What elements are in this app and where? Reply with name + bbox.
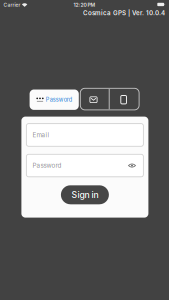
staticText: Sign in xyxy=(71,190,98,200)
staticText: Cosmica GPS | Ver. 10.0.4 xyxy=(83,9,165,17)
button[interactable]: Sign in with email xyxy=(79,89,108,110)
staticText: Password xyxy=(32,162,61,169)
staticText: 12:20 PM xyxy=(73,2,95,8)
staticText: Email xyxy=(32,131,49,139)
button[interactable]: Sign in with phone xyxy=(108,89,139,110)
staticText: Carrier xyxy=(4,2,21,8)
button[interactable]: Password xyxy=(30,89,79,110)
button[interactable]: Sign in xyxy=(61,185,109,204)
button[interactable]: Show password xyxy=(128,163,136,168)
staticText: Password xyxy=(46,96,72,103)
